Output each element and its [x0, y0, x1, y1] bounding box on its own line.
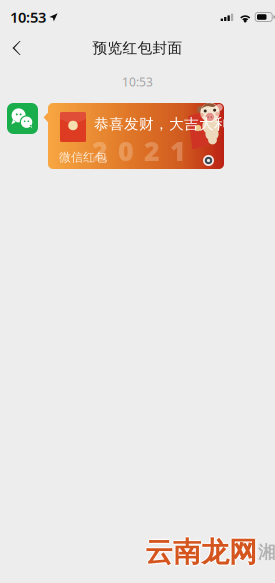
staticText: 湘: [258, 542, 275, 563]
button[interactable]: Back: [0, 32, 39, 64]
staticText: 2: [92, 133, 108, 168]
staticText: 云南龙网: [144, 535, 256, 569]
staticText: 10:53: [122, 74, 153, 90]
staticText: 2: [144, 133, 160, 168]
staticText: 1: [170, 133, 186, 168]
staticText: 恭喜发财，大吉大利: [94, 115, 229, 133]
staticText: 云南龙网: [145, 536, 257, 571]
staticText: 10:53: [10, 7, 46, 27]
staticText: 预览红包封面: [92, 39, 182, 57]
staticText: 微信红包: [59, 150, 107, 165]
staticText: 云南龙网: [145, 535, 257, 569]
staticText: 0: [118, 133, 134, 168]
staticText: 云南龙网: [145, 534, 257, 568]
staticText: 云南龙网: [146, 535, 258, 569]
